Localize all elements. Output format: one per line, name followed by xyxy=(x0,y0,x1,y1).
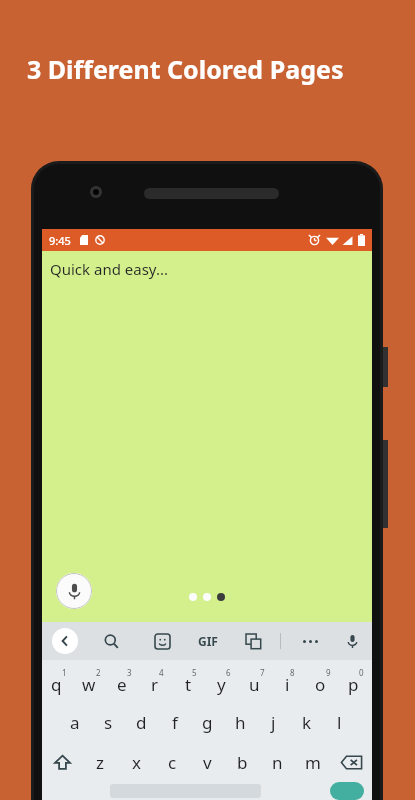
staticText: k xyxy=(302,711,312,734)
staticText: 0 xyxy=(359,667,364,678)
button[interactable]: m xyxy=(295,742,330,782)
staticText: o xyxy=(315,673,326,696)
staticText: 1 xyxy=(62,667,67,678)
button[interactable]: f xyxy=(158,702,191,742)
button[interactable]: Backspace xyxy=(330,742,372,782)
staticText: 7 xyxy=(260,667,265,678)
staticText: c xyxy=(168,751,177,774)
staticText: 2 xyxy=(96,667,101,678)
staticText: z xyxy=(96,751,104,774)
button[interactable]: GIF xyxy=(198,628,218,654)
button[interactable]: a xyxy=(58,702,92,742)
staticText: 9 xyxy=(326,667,331,678)
staticText: n xyxy=(272,751,283,774)
staticText: f xyxy=(172,711,178,734)
button[interactable]: Stickers xyxy=(149,628,175,654)
staticText: d xyxy=(136,711,147,734)
button[interactable]: d xyxy=(125,702,158,742)
button[interactable]: q xyxy=(42,660,75,702)
staticText: i xyxy=(285,673,290,696)
button[interactable]: Page 3 xyxy=(217,593,225,601)
button[interactable]: e xyxy=(108,660,141,702)
button[interactable]: x xyxy=(118,742,154,782)
button[interactable]: Quick and easy... xyxy=(42,251,372,622)
button[interactable]: Page 2 xyxy=(203,593,211,601)
staticText: b xyxy=(237,751,248,774)
staticText: v xyxy=(203,751,212,774)
button[interactable]: g xyxy=(191,702,224,742)
staticText: s xyxy=(104,711,113,734)
staticText: 8 xyxy=(290,667,295,678)
button[interactable]: Search xyxy=(98,628,124,654)
staticText: m xyxy=(305,751,321,774)
button[interactable]: Send xyxy=(330,782,364,800)
button[interactable]: Page 1 xyxy=(189,593,197,601)
staticText: e xyxy=(117,673,127,696)
button[interactable]: Shift xyxy=(42,742,82,782)
button[interactable]: Translate xyxy=(240,628,266,654)
button[interactable]: n xyxy=(260,742,295,782)
staticText: y xyxy=(217,673,226,696)
staticText: r xyxy=(151,673,159,696)
button[interactable]: b xyxy=(225,742,260,782)
button[interactable]: Voice typing xyxy=(339,628,365,654)
staticText: 9:45 xyxy=(49,233,71,248)
staticText: u xyxy=(249,673,260,696)
button[interactable]: k xyxy=(290,702,323,742)
button[interactable]: c xyxy=(154,742,190,782)
staticText: 6 xyxy=(226,667,231,678)
staticText: l xyxy=(337,711,342,734)
button[interactable]: o xyxy=(306,660,339,702)
button[interactable]: u xyxy=(240,660,273,702)
staticText: h xyxy=(235,711,246,734)
staticText: a xyxy=(70,711,80,734)
button[interactable]: w xyxy=(75,660,108,702)
staticText: 5 xyxy=(192,667,197,678)
staticText: q xyxy=(51,673,62,696)
button[interactable]: p xyxy=(339,660,372,702)
button[interactable]: Back xyxy=(52,628,78,654)
staticText: p xyxy=(348,673,359,696)
button[interactable]: s xyxy=(92,702,125,742)
button[interactable]: r xyxy=(141,660,174,702)
staticText: g xyxy=(202,711,213,734)
staticText: GIF xyxy=(198,633,218,649)
button[interactable]: h xyxy=(224,702,257,742)
button[interactable]: Voice input xyxy=(56,573,92,609)
button[interactable]: z xyxy=(82,742,118,782)
staticText: x xyxy=(132,751,141,774)
button[interactable]: t xyxy=(174,660,207,702)
button[interactable]: j xyxy=(257,702,290,742)
button[interactable]: i xyxy=(273,660,306,702)
staticText: 4 xyxy=(159,667,164,678)
button[interactable]: More options xyxy=(297,628,323,654)
staticText: 3 xyxy=(127,667,132,678)
button[interactable]: v xyxy=(190,742,225,782)
staticText: j xyxy=(271,711,276,734)
staticText: w xyxy=(82,673,96,696)
staticText: Quick and easy... xyxy=(50,259,168,279)
staticText: 3 Different Colored Pages xyxy=(27,52,344,86)
button[interactable]: y xyxy=(207,660,240,702)
staticText: t xyxy=(185,673,192,696)
button[interactable]: l xyxy=(323,702,356,742)
